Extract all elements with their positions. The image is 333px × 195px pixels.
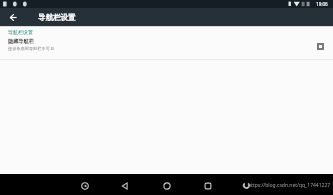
staticText: 使设备底部导航栏不可见 <box>8 46 55 51</box>
staticText: 隐藏导航栏 <box>8 38 34 45</box>
staticText: https://blog.csdn.net/qq_17441227 <box>248 182 331 189</box>
staticText: 19:06 <box>316 1 328 7</box>
staticText: 导航栏设置 <box>38 13 76 22</box>
button[interactable] <box>317 43 324 50</box>
button[interactable] <box>118 179 132 193</box>
button[interactable] <box>160 179 174 193</box>
staticText: 导航栏设置 <box>8 29 33 35</box>
button[interactable] <box>201 179 215 193</box>
button[interactable] <box>78 179 92 193</box>
button[interactable] <box>0 8 26 26</box>
button[interactable]: 隐藏导航栏 <box>0 35 333 59</box>
